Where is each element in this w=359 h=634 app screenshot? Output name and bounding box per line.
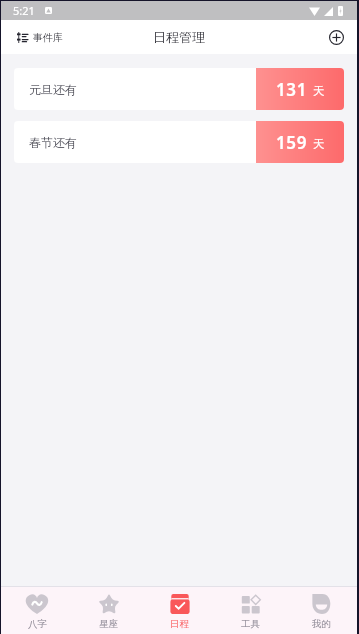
staticText: 131	[276, 78, 307, 101]
button[interactable]: Add event	[318, 20, 357, 54]
staticText: 工具	[241, 618, 260, 630]
staticText: 星座	[99, 618, 118, 630]
staticText: 春节还有	[29, 135, 256, 150]
button[interactable]: 日程	[144, 587, 215, 634]
button[interactable]: 工具	[215, 587, 286, 634]
staticText: 日程	[170, 618, 189, 630]
staticText: 5:21	[13, 3, 35, 18]
button[interactable]: 我的	[286, 587, 357, 634]
staticText: 元旦还有	[29, 82, 256, 97]
button[interactable]: 事件库	[1, 20, 73, 54]
button[interactable]: 八字	[1, 587, 73, 634]
staticText: 事件库	[33, 31, 63, 44]
staticText: 天	[313, 137, 325, 151]
staticText: 159	[276, 131, 307, 154]
staticText: 日程管理	[153, 29, 205, 45]
button[interactable]: 春节还有	[14, 121, 344, 163]
staticText: 天	[313, 84, 325, 98]
button[interactable]: 星座	[73, 587, 144, 634]
staticText: 八字	[28, 618, 47, 630]
button[interactable]: 元旦还有	[14, 68, 344, 110]
staticText: 我的	[312, 618, 331, 630]
